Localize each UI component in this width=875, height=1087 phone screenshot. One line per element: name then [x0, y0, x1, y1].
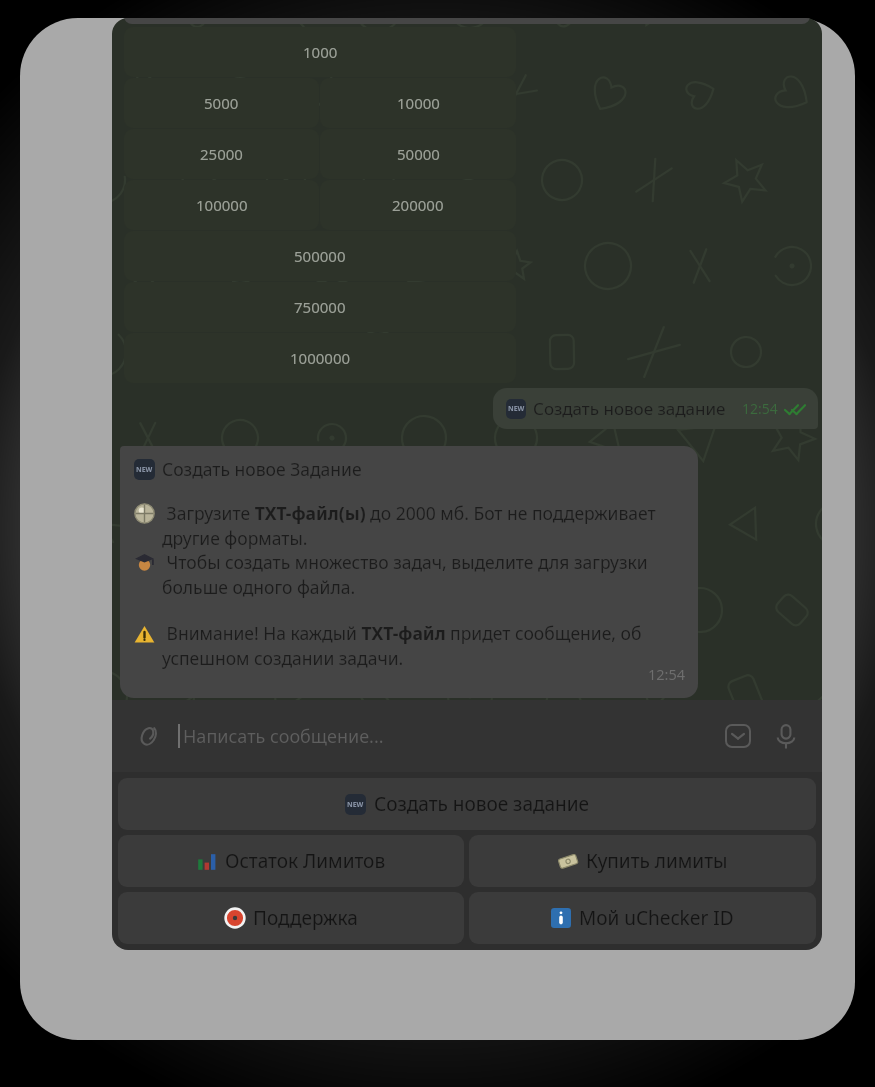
- staticText: 5000: [204, 93, 239, 113]
- button[interactable]: NEW: [120, 446, 698, 698]
- button[interactable]: 50000: [320, 129, 516, 179]
- button[interactable]: Остаток Лимитов: [118, 835, 464, 887]
- button[interactable]: NEW: [118, 778, 816, 830]
- button[interactable]: Поддержка: [118, 892, 464, 944]
- staticText: Создать новое задание: [374, 791, 589, 817]
- staticText: 1000: [303, 42, 338, 62]
- staticText: Купить лимиты: [586, 848, 728, 874]
- button[interactable]: 750000: [124, 282, 516, 332]
- staticText: 50000: [397, 144, 440, 164]
- button[interactable]: 10000: [320, 78, 516, 128]
- staticText: Чтобы создать множество задач, выделите …: [162, 550, 686, 599]
- staticText: 200000: [392, 195, 444, 215]
- button[interactable]: 1000000: [124, 333, 516, 383]
- staticText: 12:54: [648, 664, 686, 684]
- staticText: Создать новое Задание: [162, 457, 362, 481]
- staticText: NEW: [136, 465, 153, 475]
- staticText: NEW: [347, 800, 364, 810]
- staticText: Загрузите TXT-файл(ы) до 2000 мб. Бот не…: [162, 501, 686, 550]
- staticText: 750000: [294, 297, 346, 317]
- staticText: 100000: [196, 195, 248, 215]
- staticText: Поддержка: [253, 905, 358, 931]
- staticText: 10000: [397, 93, 440, 113]
- staticText: 25000: [200, 144, 243, 164]
- button[interactable]: Attach file: [126, 714, 170, 758]
- button[interactable]: 5000: [124, 78, 319, 128]
- staticText: Внимание! На каждый TXT-файл придет сооб…: [162, 621, 686, 670]
- staticText: Написать сообщение...: [183, 724, 384, 749]
- button[interactable]: NEW: [493, 388, 818, 429]
- staticText: Остаток Лимитов: [225, 848, 386, 874]
- button[interactable]: 1000: [124, 27, 516, 77]
- button[interactable]: Мой uChecker ID: [469, 892, 816, 944]
- button[interactable]: 500000: [124, 231, 516, 281]
- button[interactable]: Купить лимиты: [469, 835, 816, 887]
- staticText: 500000: [294, 246, 346, 266]
- button[interactable]: 25000: [124, 129, 319, 179]
- button[interactable]: 100000: [124, 180, 319, 230]
- staticText: NEW: [508, 404, 525, 414]
- button[interactable]: 200000: [320, 180, 516, 230]
- staticText: 1000000: [290, 348, 351, 368]
- button[interactable]: Record voice message: [764, 714, 808, 758]
- staticText: Мой uChecker ID: [579, 905, 734, 931]
- button[interactable]: Hide keyboard: [716, 714, 760, 758]
- staticText: 12:54: [742, 399, 778, 418]
- staticText: Создать новое задание: [533, 397, 726, 420]
